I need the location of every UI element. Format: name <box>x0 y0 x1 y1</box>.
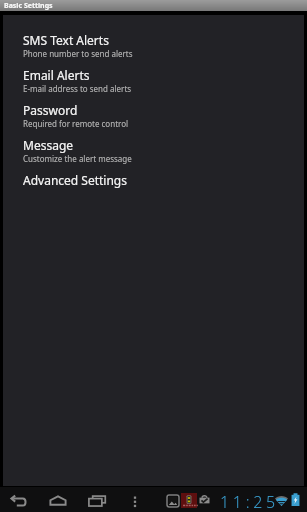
button[interactable]: Recent apps <box>78 487 116 512</box>
button[interactable]: Password <box>3 102 304 137</box>
staticText: E-mail address to send alerts <box>23 83 132 94</box>
staticText: Phone number to send alerts <box>23 48 133 59</box>
staticText: Message <box>23 137 74 153</box>
button[interactable]: Back <box>0 487 38 512</box>
staticText: Customize the alert message <box>23 153 132 164</box>
button[interactable]: Home <box>38 487 76 512</box>
staticText: Required for remote control <box>23 118 129 129</box>
button[interactable]: Message <box>3 137 304 172</box>
button[interactable]: Email Alerts <box>3 67 304 102</box>
staticText: Email Alerts <box>23 67 90 83</box>
button[interactable]: Advanced Settings <box>3 172 304 207</box>
button[interactable]: SMS Text Alerts <box>3 32 304 67</box>
staticText: SMS Text Alerts <box>23 32 109 48</box>
staticText: Password <box>23 102 78 118</box>
button[interactable]: More options <box>124 487 146 512</box>
staticText: Basic Settings <box>4 1 53 11</box>
staticText: Advanced Settings <box>23 172 127 188</box>
staticText: 11:25 <box>220 491 279 512</box>
